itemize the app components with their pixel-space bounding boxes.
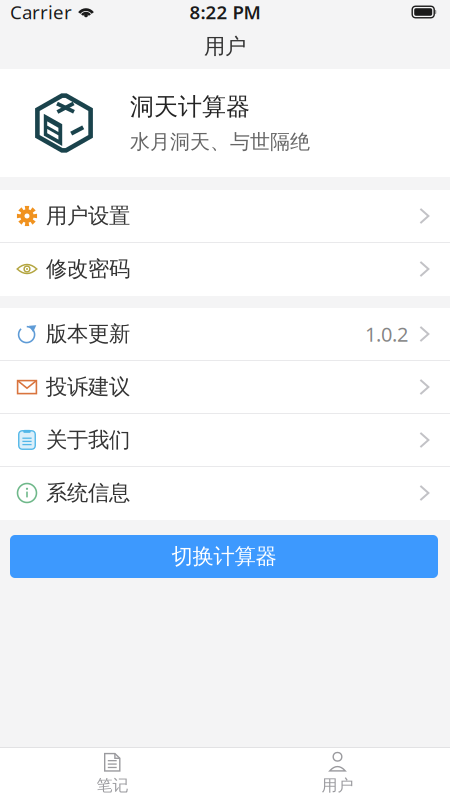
- staticText: 水月洞天、与世隔绝: [130, 129, 310, 154]
- staticText: 用户: [321, 776, 353, 795]
- button[interactable]: 系统信息: [0, 467, 450, 520]
- button[interactable]: 关于我们: [0, 414, 450, 467]
- staticText: 版本更新: [46, 321, 130, 347]
- staticText: 切换计算器: [171, 543, 276, 570]
- staticText: 1.0.2: [365, 321, 408, 347]
- staticText: 投诉建议: [46, 374, 130, 400]
- staticText: 修改密码: [46, 256, 130, 282]
- staticText: 系统信息: [46, 480, 130, 506]
- staticText: Carrier: [10, 0, 72, 24]
- button[interactable]: 用户设置: [0, 190, 450, 243]
- button[interactable]: 笔记: [0, 748, 225, 800]
- staticText: 笔记: [96, 776, 128, 795]
- button[interactable]: 版本更新: [0, 308, 450, 361]
- button[interactable]: 切换计算器: [10, 535, 438, 578]
- staticText: 关于我们: [46, 427, 130, 453]
- staticText: 用户: [204, 33, 246, 60]
- button[interactable]: 用户: [225, 748, 450, 800]
- button[interactable]: 修改密码: [0, 243, 450, 296]
- button[interactable]: 投诉建议: [0, 361, 450, 414]
- staticText: 用户设置: [46, 203, 130, 229]
- staticText: 洞天计算器: [130, 92, 250, 121]
- staticText: 8:22 PM: [189, 0, 260, 24]
